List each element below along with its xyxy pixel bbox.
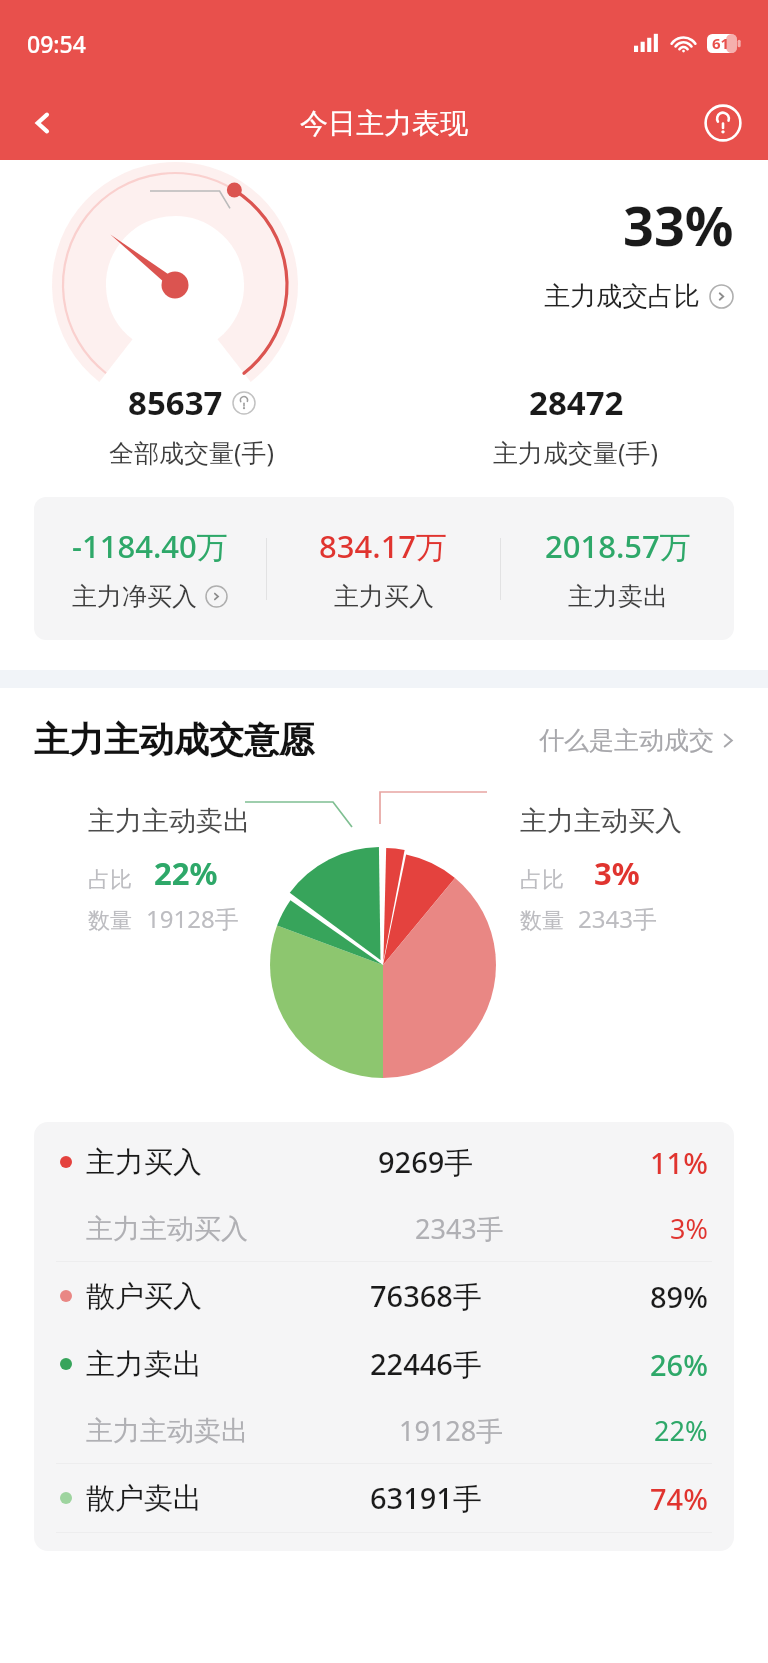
staticText: 74%	[650, 1479, 708, 1518]
staticText: 主力主动买入	[520, 804, 682, 838]
staticText: 33%	[623, 188, 734, 262]
staticText: 主力卖出	[568, 581, 668, 612]
staticText: 89%	[650, 1277, 708, 1316]
staticText: 26%	[650, 1345, 708, 1384]
staticText: 主力主动买入	[86, 1212, 248, 1246]
staticText: 占比	[520, 866, 564, 894]
staticText: 11%	[650, 1143, 708, 1182]
staticText: 63191手	[370, 1478, 482, 1518]
staticText: 19128手	[146, 902, 239, 935]
staticText: 9269手	[378, 1142, 474, 1182]
staticText: 19128手	[399, 1412, 504, 1449]
staticText: 76368手	[370, 1276, 482, 1316]
staticText: 834.17万	[319, 525, 448, 567]
staticText: 今日主力表现	[300, 106, 468, 141]
staticText: 主力买入	[334, 581, 434, 612]
staticText: 2343手	[415, 1210, 504, 1247]
staticText: 主力主动卖出	[86, 1414, 248, 1448]
button[interactable]: 主力主动买入	[34, 1196, 734, 1261]
staticText: 2343手	[578, 902, 657, 935]
staticText: 什么是主动成交	[539, 725, 714, 756]
staticText: 2018.57万	[545, 525, 691, 567]
staticText: 散户买入	[86, 1278, 202, 1315]
button[interactable]: 散户买入	[34, 1262, 734, 1330]
button[interactable]: Help	[694, 94, 752, 152]
staticText: 22%	[154, 852, 218, 894]
staticText: 主力主动成交意愿	[34, 718, 314, 762]
staticText: 22%	[654, 1412, 708, 1449]
staticText: 28472	[529, 380, 624, 425]
button[interactable]: 主力成交占比	[544, 280, 734, 313]
staticText: -1184.40万	[72, 525, 228, 567]
staticText: 主力净买入	[72, 581, 197, 612]
staticText: 09:54	[27, 28, 86, 59]
button[interactable]: 主力主动卖出	[34, 1398, 734, 1463]
button[interactable]: -1184.40万	[34, 525, 266, 612]
button[interactable]: 什么是主动成交	[533, 719, 742, 762]
button[interactable]: 主力买入	[34, 1128, 734, 1196]
staticText: 61	[712, 33, 730, 53]
staticText: 数量	[520, 907, 564, 935]
staticText: 3%	[670, 1210, 708, 1247]
staticText: 3%	[594, 852, 640, 894]
button[interactable]: 85637	[0, 380, 384, 469]
staticText: 主力成交量(手)	[493, 435, 659, 469]
staticText: 85637	[128, 380, 223, 425]
button[interactable]: Back	[14, 94, 72, 152]
staticText: 主力买入	[86, 1144, 202, 1181]
staticText: 主力成交占比	[544, 280, 700, 313]
staticText: 全部成交量(手)	[109, 435, 275, 469]
staticText: 主力卖出	[86, 1346, 202, 1383]
staticText: 主力主动卖出	[88, 804, 250, 838]
staticText: 占比	[88, 866, 132, 894]
staticText: 22446手	[370, 1344, 482, 1384]
staticText: 数量	[88, 907, 132, 935]
button[interactable]: 散户卖出	[34, 1464, 734, 1532]
button[interactable]: 主力卖出	[34, 1330, 734, 1398]
staticText: 散户卖出	[86, 1480, 202, 1517]
